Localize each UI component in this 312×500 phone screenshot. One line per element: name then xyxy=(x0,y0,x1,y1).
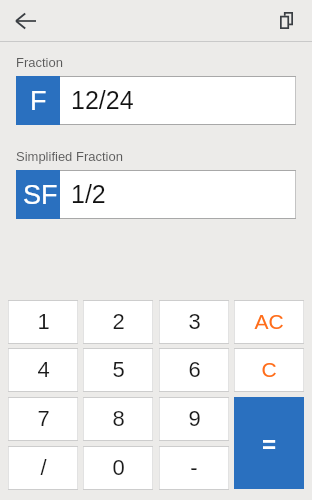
staticText: AC xyxy=(254,310,284,333)
staticText: 6 xyxy=(188,357,201,382)
button[interactable]: Copy xyxy=(268,2,304,38)
button[interactable]: 2 xyxy=(83,300,153,344)
staticText: 2 xyxy=(112,309,125,334)
staticText: - xyxy=(190,455,198,480)
button[interactable]: 9 xyxy=(159,397,229,441)
staticText: Simplified Fraction xyxy=(16,149,123,164)
button[interactable]: 6 xyxy=(159,348,229,392)
staticText: 1/2 xyxy=(71,180,106,208)
staticText: = xyxy=(262,431,277,458)
staticText: 7 xyxy=(37,406,50,431)
button[interactable]: = xyxy=(234,397,304,489)
staticText: 8 xyxy=(112,406,125,431)
button[interactable]: 0 xyxy=(83,446,153,490)
button[interactable]: C xyxy=(234,348,304,392)
staticText: 5 xyxy=(112,357,125,382)
staticText: C xyxy=(261,358,277,381)
staticText: SF xyxy=(23,180,58,210)
button[interactable]: AC xyxy=(234,300,304,344)
staticText: 12/24 xyxy=(71,86,134,114)
button[interactable]: 8 xyxy=(83,397,153,441)
staticText: / xyxy=(40,455,47,480)
button[interactable]: 4 xyxy=(8,348,78,392)
button[interactable]: 5 xyxy=(83,348,153,392)
staticText: 4 xyxy=(37,357,50,382)
staticText: 1 xyxy=(37,309,50,334)
button[interactable]: Back xyxy=(6,1,46,41)
staticText: F xyxy=(30,86,47,116)
staticText: 3 xyxy=(188,309,201,334)
staticText: 0 xyxy=(112,455,125,480)
button[interactable]: - xyxy=(159,446,229,490)
button[interactable]: 3 xyxy=(159,300,229,344)
button[interactable]: 1 xyxy=(8,300,78,344)
staticText: Fraction xyxy=(16,55,63,70)
button[interactable]: 7 xyxy=(8,397,78,441)
button[interactable]: / xyxy=(8,446,78,490)
staticText: 9 xyxy=(188,406,201,431)
